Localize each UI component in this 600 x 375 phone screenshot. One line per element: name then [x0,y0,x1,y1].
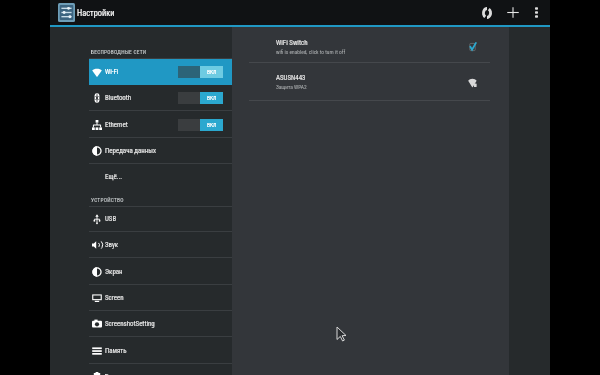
staticText: Передача данных [105,147,157,155]
button[interactable]: Screen [89,285,232,310]
button[interactable]: ScreenshotSetting [89,311,232,336]
staticText: Wi-Fi [105,68,119,76]
staticText: Экран [105,268,123,276]
button[interactable]: Settings [58,3,75,22]
staticText: Ethernet [105,121,128,129]
staticText: Память [105,347,127,355]
button[interactable]: Scan for networks [474,0,499,25]
staticText: Screen [105,294,124,302]
button[interactable]: Батарея [89,364,232,375]
staticText: УСТРОЙСТВО [91,197,124,203]
staticText: БЕСПРОВОДНЫЕ СЕТИ [91,49,147,55]
button[interactable]: Ethernet [89,112,232,137]
staticText: Настройки [77,8,115,18]
staticText: USB [105,215,117,223]
staticText: Звук [105,241,119,249]
staticText: ASUSN443 [276,74,306,82]
button[interactable]: Экран [89,259,232,284]
button[interactable]: USB [89,206,232,231]
staticText: WiFi Switch [276,39,308,47]
staticText: Батарея [105,373,129,375]
button[interactable]: ASUSN443 [232,63,509,101]
staticText: wifi is enabled, click to turn it off [276,49,346,55]
button[interactable]: WiFi Switch [232,27,509,63]
button[interactable]: Toggle [178,66,223,78]
staticText: Ещё... [105,173,123,181]
button[interactable]: More options [525,0,548,25]
button[interactable]: Звук [89,232,232,257]
button[interactable]: Wi-Fi [89,59,232,85]
staticText: ВКЛ [207,95,217,101]
button[interactable]: Память [89,338,232,363]
button[interactable]: Toggle [178,119,223,131]
staticText: ВКЛ [207,122,217,128]
button[interactable]: Toggle [178,92,223,104]
staticText: Защита WPA2 [276,84,307,90]
button[interactable]: Передача данных [89,138,232,163]
staticText: ScreenshotSetting [105,320,155,328]
button[interactable]: Ещё... [89,164,232,189]
staticText: Bluetooth [105,94,132,102]
button[interactable]: Bluetooth [89,85,232,110]
staticText: ВКЛ [207,69,217,75]
button[interactable]: Add network [500,0,525,25]
